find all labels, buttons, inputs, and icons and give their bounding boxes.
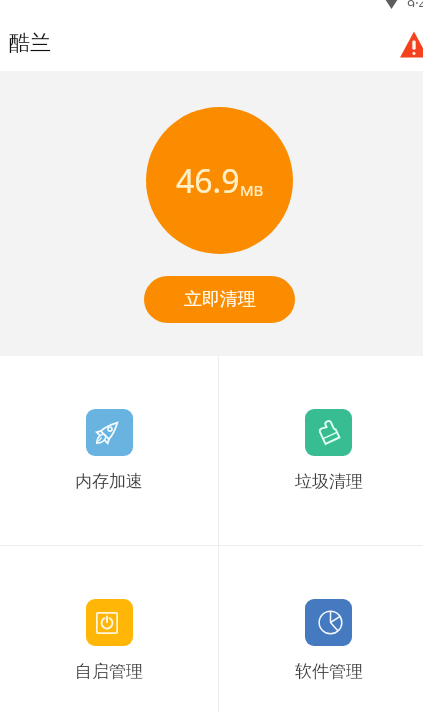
staticText: MB (240, 180, 264, 200)
staticText: 酷兰 (9, 30, 51, 56)
button[interactable]: 内存加速 (0, 356, 218, 545)
staticText: 自启管理 (75, 661, 143, 682)
staticText: 内存加速 (75, 471, 143, 492)
staticText: 软件管理 (295, 661, 363, 682)
staticText: 9:45 (407, 0, 423, 7)
button[interactable]: 软件管理 (219, 546, 423, 712)
button[interactable]: 46.9 (146, 107, 293, 254)
staticText: 垃圾清理 (295, 471, 363, 492)
button[interactable]: 自启管理 (0, 546, 218, 712)
button[interactable]: Warning (390, 18, 423, 66)
button[interactable]: 立即清理 (144, 276, 295, 323)
button[interactable]: 垃圾清理 (219, 356, 423, 545)
staticText: 立即清理 (184, 288, 256, 311)
staticText: 46.9 (176, 159, 240, 203)
